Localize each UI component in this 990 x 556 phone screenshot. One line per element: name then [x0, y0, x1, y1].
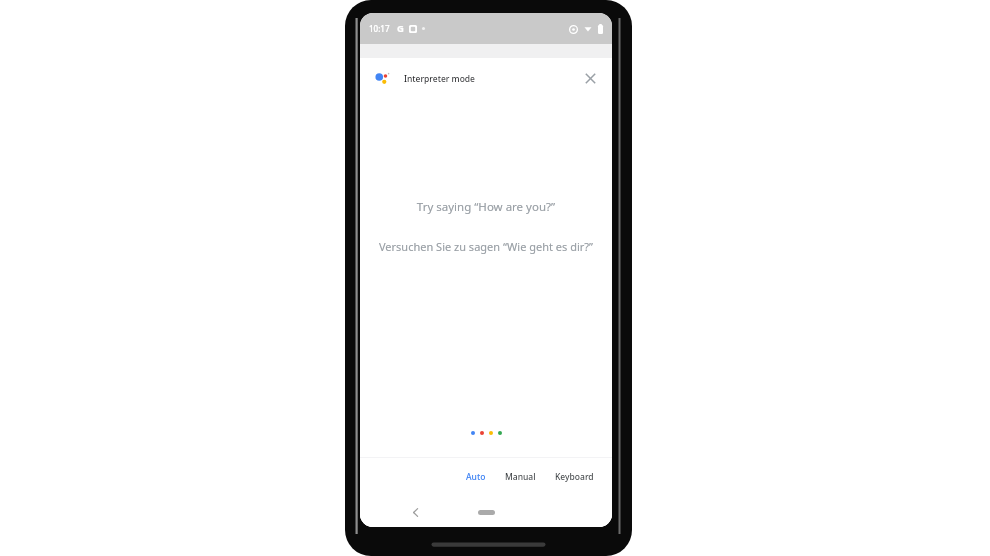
staticText: Try saying “How are you?” [378, 199, 594, 215]
staticText: Auto [466, 471, 486, 483]
button[interactable]: Manual [503, 467, 538, 487]
staticText: G [397, 22, 404, 35]
staticText: 10:17 [369, 23, 390, 34]
staticText: Manual [505, 471, 536, 483]
button[interactable]: Close [579, 67, 601, 89]
staticText: Keyboard [555, 471, 594, 483]
button[interactable]: Auto [464, 467, 488, 487]
button[interactable]: Home [473, 505, 499, 519]
button[interactable]: Back [405, 502, 425, 522]
staticText: Versuchen Sie zu sagen “Wie geht es dir?… [378, 239, 594, 254]
button[interactable]: Keyboard [553, 467, 596, 487]
staticText: Interpreter mode [404, 73, 475, 85]
